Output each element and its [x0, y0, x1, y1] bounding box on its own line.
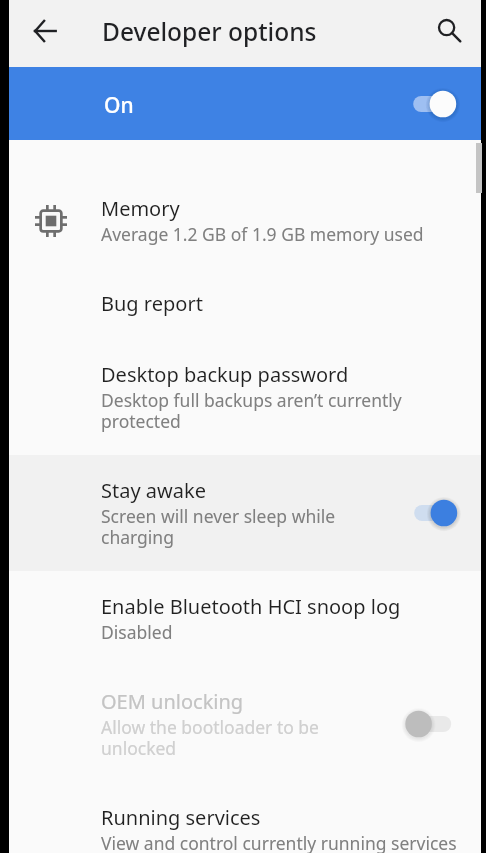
staticText: Running services [101, 804, 261, 831]
staticText: Allow the bootloader to be unlocked [101, 715, 363, 760]
staticText: On [104, 91, 134, 120]
button[interactable]: Memory [9, 173, 481, 268]
button[interactable]: Desktop backup password [9, 339, 481, 455]
staticText: Developer options [102, 15, 317, 48]
button[interactable]: Bug report [9, 268, 481, 339]
staticText: Average 1.2 GB of 1.9 GB memory used [101, 222, 424, 246]
staticText: Screen will never sleep while charging [101, 504, 363, 549]
button[interactable]: Running services [9, 782, 481, 853]
button[interactable]: Developer options on [404, 90, 460, 118]
staticText: Stay awake [101, 477, 206, 504]
staticText: Disabled [101, 620, 173, 644]
staticText: OEM unlocking [101, 688, 244, 715]
staticText: Desktop full backups aren’t currently pr… [101, 388, 467, 433]
staticText: Memory [101, 195, 180, 222]
button[interactable]: OEM unlocking off [405, 710, 461, 738]
button[interactable]: On [9, 67, 481, 140]
staticText: Desktop backup password [101, 361, 349, 388]
button[interactable]: Search [417, 0, 483, 64]
staticText: Enable Bluetooth HCI snoop log [101, 593, 401, 620]
button[interactable]: Stay awake [9, 455, 481, 571]
button[interactable]: OEM unlocking [9, 666, 481, 782]
staticText: View and control currently running servi… [101, 831, 457, 853]
button[interactable]: Back [12, 0, 78, 64]
staticText: Bug report [101, 290, 203, 317]
button[interactable]: Enable Bluetooth HCI snoop log [9, 571, 481, 666]
button[interactable]: Stay awake on [405, 499, 461, 527]
